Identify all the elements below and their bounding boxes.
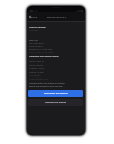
staticText: Hardware and device details [29, 55, 59, 58]
staticText: Key: 8F2C-9D4A [29, 42, 45, 45]
staticText: Need help with this? [29, 78, 49, 81]
staticText: Seats in use: 3 of 5 today [29, 51, 54, 54]
staticText: Model: Pixel 7a [29, 60, 44, 63]
staticText: device and removes it from this one. [29, 85, 64, 88]
staticText: Transfer the licence [45, 101, 67, 104]
button[interactable]: Reactivate this licence [28, 90, 83, 97]
staticText: Since 04/2024 [29, 45, 43, 48]
staticText: Serial: 8F2C9D [29, 64, 44, 67]
staticText: Reactivate this licence [44, 92, 68, 95]
staticText: Plan: Pro [29, 39, 38, 42]
staticText: Transfer moves this licence to another [29, 82, 65, 85]
staticText: DEVICE DETAILS [47, 15, 67, 18]
staticText: Android 14 (34) [29, 67, 44, 70]
staticText: 128 GB free [29, 74, 41, 77]
button[interactable]: Back [27, 13, 40, 20]
staticText: Renews on 12 Nov 2025 [29, 48, 53, 51]
staticText: Activation [29, 29, 39, 32]
button[interactable]: Transfer the licence [28, 99, 83, 106]
staticText: Synced 4 h ago [29, 71, 44, 74]
staticText: Licence details [29, 25, 46, 28]
staticText: BACK [31, 15, 38, 18]
